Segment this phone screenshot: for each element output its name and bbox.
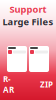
staticText: RAR bbox=[3, 74, 14, 95]
staticText: Large Files bbox=[2, 15, 53, 28]
staticText: ZIP bbox=[40, 79, 53, 90]
staticText: Support bbox=[9, 3, 46, 15]
